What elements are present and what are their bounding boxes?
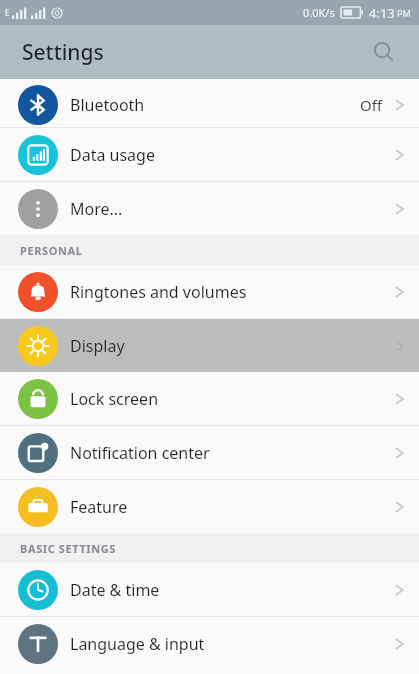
button[interactable]: Language & input — [0, 617, 419, 670]
staticText: More... — [70, 198, 395, 220]
staticText: E — [5, 7, 10, 18]
staticText: PM — [397, 7, 411, 19]
button[interactable]: Feature — [0, 480, 419, 533]
staticText: Language & input — [70, 633, 395, 655]
button[interactable]: Search — [363, 31, 405, 73]
staticText: Data usage — [70, 144, 395, 166]
staticText: Settings — [22, 38, 104, 67]
staticText: 0.0K/s — [303, 5, 335, 20]
button[interactable]: More... — [0, 182, 419, 235]
staticText: Display — [70, 335, 395, 357]
button[interactable]: Ringtones and volumes — [0, 265, 419, 318]
button[interactable]: Bluetooth — [0, 83, 419, 127]
staticText: Feature — [70, 496, 395, 518]
button[interactable]: Date & time — [0, 563, 419, 616]
staticText: Bluetooth — [70, 94, 360, 116]
staticText: BASIC SETTINGS — [20, 541, 116, 556]
button[interactable]: Lock screen — [0, 372, 419, 425]
staticText: 4:13 — [369, 4, 395, 22]
staticText: Off — [360, 95, 383, 115]
staticText: Notification center — [70, 442, 395, 464]
staticText: Lock screen — [70, 388, 395, 410]
staticText: Ringtones and volumes — [70, 281, 395, 303]
button[interactable]: Display — [0, 319, 419, 372]
button[interactable]: Data usage — [0, 128, 419, 181]
staticText: PERSONAL — [20, 243, 83, 258]
button[interactable]: Notification center — [0, 426, 419, 479]
staticText: Date & time — [70, 579, 395, 601]
